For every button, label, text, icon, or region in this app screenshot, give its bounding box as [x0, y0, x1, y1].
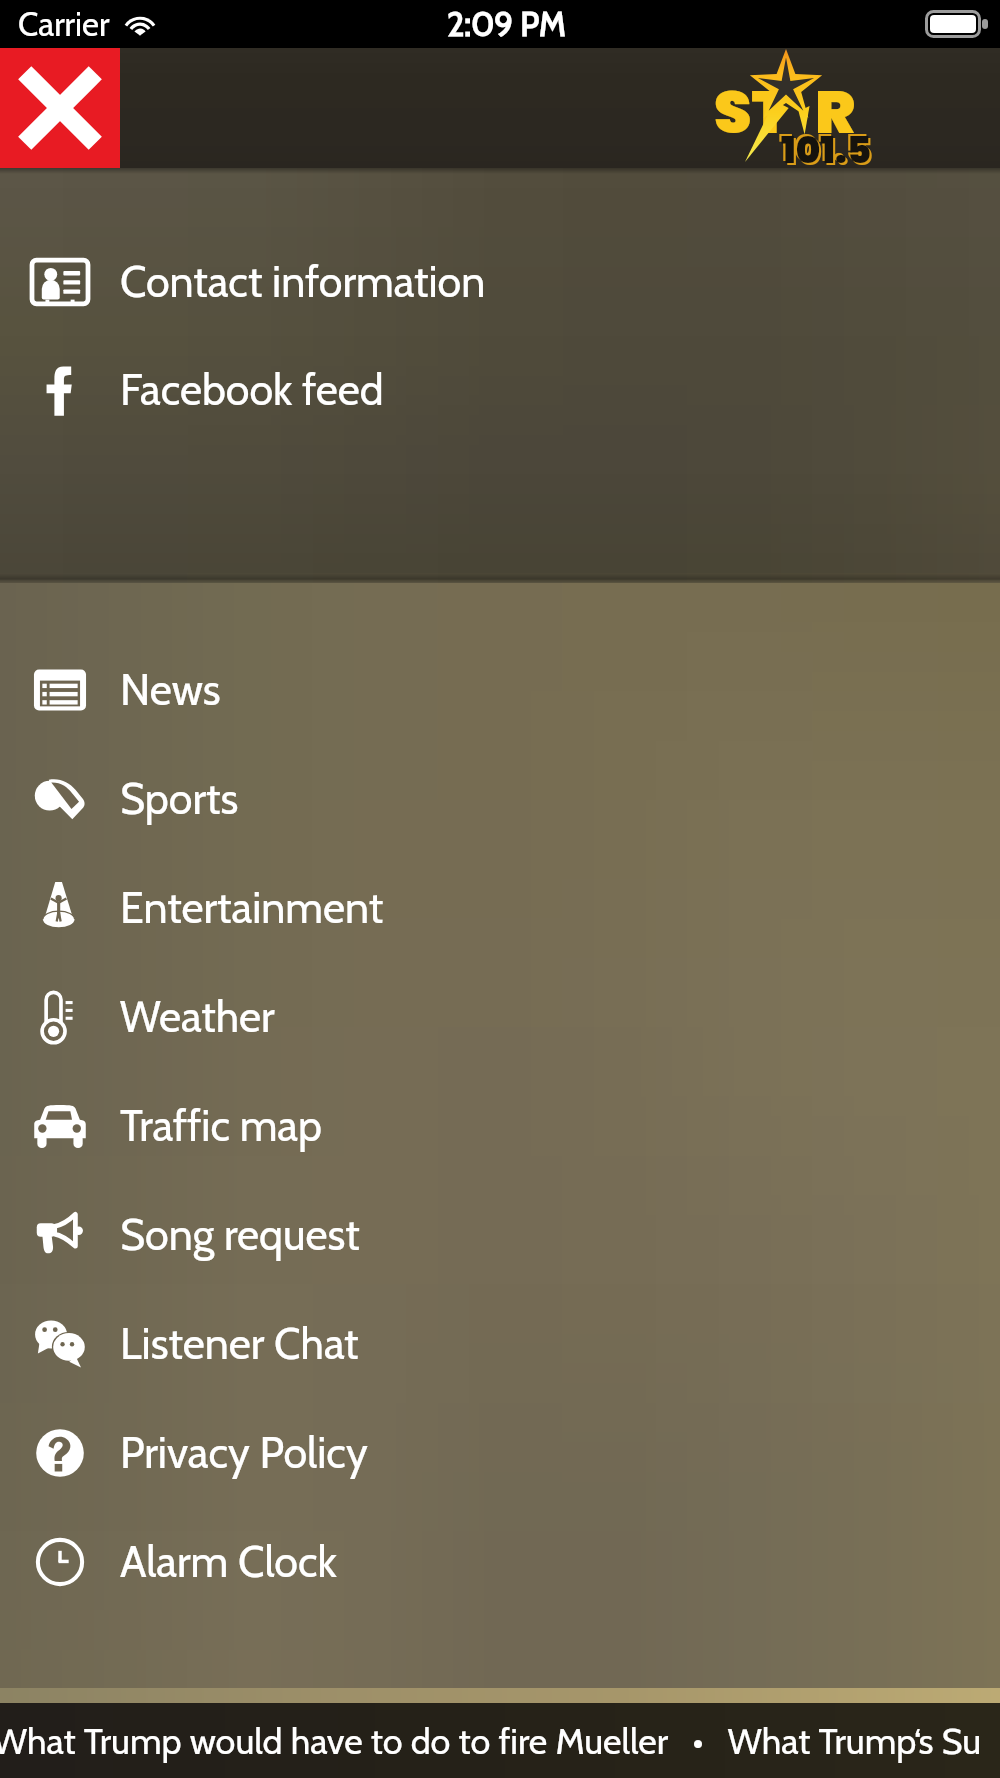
button[interactable]: Privacy Policy: [0, 1399, 1000, 1507]
button[interactable]: Weather: [0, 963, 1000, 1071]
staticText: Contact information: [120, 256, 486, 308]
staticText: 101.5: [783, 126, 874, 178]
button[interactable]: Traffic map: [0, 1072, 1000, 1180]
staticText: 101.5: [779, 122, 870, 174]
staticText: Carrier: [18, 4, 110, 44]
button[interactable]: Alarm Clock: [0, 1508, 1000, 1616]
staticText: Weather: [120, 991, 275, 1043]
staticText: R: [815, 70, 856, 154]
staticText: Entertainment: [120, 882, 384, 934]
staticText: 101.5: [781, 124, 872, 176]
staticText: Privacy Policy: [120, 1427, 368, 1479]
staticText: Song request: [120, 1209, 360, 1261]
button[interactable]: What Trump would have to do to fire Muel…: [0, 1703, 1000, 1778]
button[interactable]: Contact information: [0, 228, 1000, 336]
staticText: Listener Chat: [120, 1318, 359, 1370]
staticText: News: [120, 664, 221, 716]
button[interactable]: News: [0, 636, 1000, 744]
button[interactable]: Sports: [0, 745, 1000, 853]
staticText: Facebook feed: [120, 364, 384, 416]
staticText: 2:09 PM: [447, 4, 566, 44]
staticText: Traffic map: [120, 1100, 322, 1152]
staticText: What Trump would have to do to fire Muel…: [0, 1719, 982, 1763]
button[interactable]: Entertainment: [0, 854, 1000, 962]
button[interactable]: Facebook feed: [0, 336, 1000, 444]
staticText: Sports: [120, 773, 239, 825]
button[interactable]: Close: [0, 48, 120, 168]
staticText: Alarm Clock: [120, 1536, 337, 1588]
staticText: ST: [714, 70, 789, 154]
button[interactable]: Song request: [0, 1181, 1000, 1289]
button[interactable]: Listener Chat: [0, 1290, 1000, 1398]
